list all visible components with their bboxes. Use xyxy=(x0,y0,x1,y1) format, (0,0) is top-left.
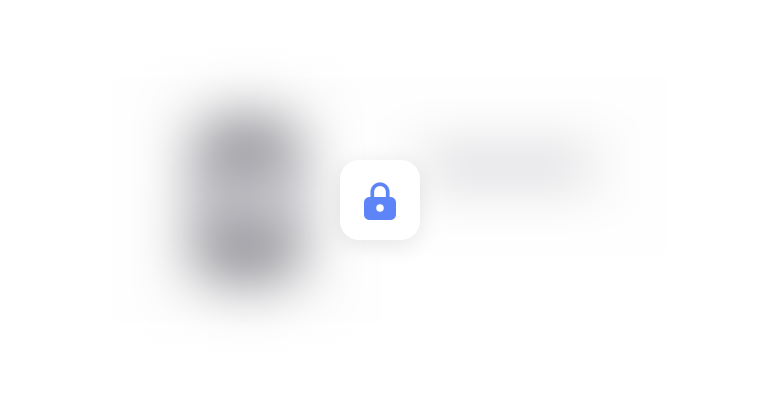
button[interactable]: Unlock xyxy=(340,160,420,240)
